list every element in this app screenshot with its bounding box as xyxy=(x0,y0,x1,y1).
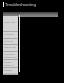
staticText: Software update failed midway xyxy=(4,69,17,75)
button[interactable]: Software update failed midway xyxy=(3,68,18,75)
button[interactable]: No sound xyxy=(3,39,18,45)
staticText: No picture xyxy=(4,33,14,36)
button[interactable]: Remote fails xyxy=(3,45,18,52)
button[interactable]: The app crashes at launch time xyxy=(3,60,18,68)
button[interactable]: No picture xyxy=(3,32,18,39)
button[interactable]: Troubleshooting xyxy=(0,0,64,9)
staticText: Power issue xyxy=(4,21,16,24)
staticText: Wi-Fi keeps dropping out often xyxy=(4,53,17,60)
staticText: No sound xyxy=(4,40,14,43)
staticText: Remote fails xyxy=(4,46,16,49)
button[interactable]: Power issue xyxy=(3,20,18,32)
staticText: The app crashes at launch time xyxy=(4,61,17,68)
button[interactable]: Wi-Fi keeps dropping out often xyxy=(3,52,18,60)
button[interactable] xyxy=(3,12,58,17)
staticText: Troubleshooting xyxy=(5,2,36,7)
